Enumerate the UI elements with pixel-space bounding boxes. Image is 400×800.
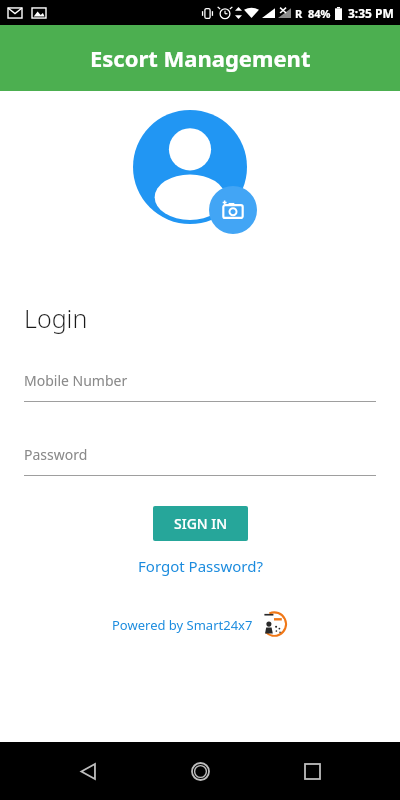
button[interactable]: Profile photo	[133, 110, 247, 224]
staticText: 3:35 PM	[348, 5, 394, 21]
staticText: Powered by Smart24x7	[112, 616, 253, 634]
staticText: R	[295, 6, 303, 21]
button[interactable]: SIGN IN	[153, 506, 248, 541]
staticText: Mobile Number	[24, 371, 128, 390]
staticText: Forgot Password?	[138, 556, 263, 576]
staticText: 84%	[308, 6, 331, 21]
button[interactable]: Forgot Password?	[130, 553, 271, 579]
staticText: Escort Management	[90, 43, 311, 73]
button[interactable]: Password	[0, 445, 400, 476]
button[interactable]: Home	[176, 747, 224, 795]
button[interactable]: Back	[64, 747, 112, 795]
button[interactable]: Recent apps	[288, 747, 336, 795]
button[interactable]: Change photo	[209, 186, 257, 234]
staticText: Password	[24, 445, 88, 464]
staticText: SIGN IN	[174, 514, 228, 533]
staticText: Login	[24, 301, 88, 335]
button[interactable]: Mobile Number	[0, 371, 400, 402]
